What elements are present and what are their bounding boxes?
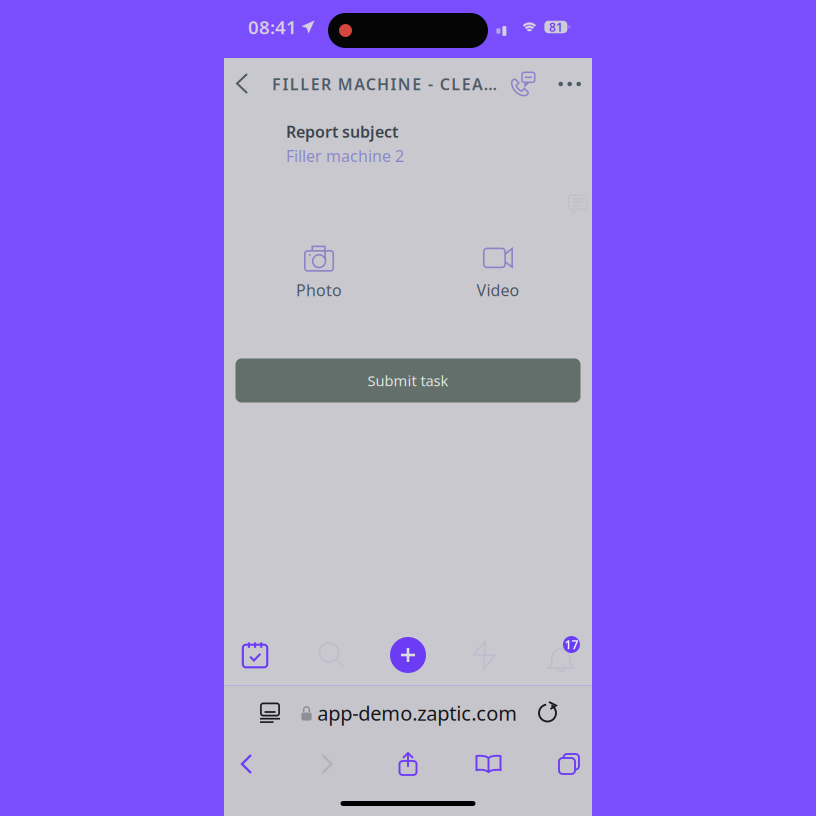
- staticText: Report subject: [286, 121, 398, 142]
- button[interactable]: Back: [224, 741, 270, 787]
- staticText: Video: [476, 279, 519, 301]
- staticText: 81: [549, 19, 563, 35]
- button[interactable]: Notifications: [529, 625, 593, 685]
- button[interactable]: Tasks: [223, 625, 287, 685]
- button[interactable]: Photo: [259, 244, 379, 300]
- staticText: FILLER MACHINE - CLEA…: [272, 73, 497, 95]
- button[interactable]: Call: [505, 71, 540, 96]
- button[interactable]: Page settings: [248, 691, 292, 735]
- button[interactable]: Share: [385, 741, 431, 787]
- staticText: Photo: [296, 279, 342, 301]
- button[interactable]: Add: [376, 625, 440, 685]
- button[interactable]: Submit task: [235, 358, 580, 402]
- button[interactable]: Tabs: [546, 741, 592, 787]
- button[interactable]: Video: [438, 244, 558, 300]
- button[interactable]: Bookmarks: [465, 741, 511, 787]
- staticText: 08:41: [248, 15, 297, 39]
- button[interactable]: Reload: [526, 691, 570, 735]
- staticText: app-demo.zaptic.com: [317, 700, 517, 726]
- staticText: 17: [564, 636, 578, 652]
- button[interactable]: More: [552, 72, 587, 96]
- staticText: Submit task: [367, 371, 448, 390]
- button[interactable]: Back: [215, 61, 272, 107]
- staticText: Filler machine 2: [286, 145, 404, 166]
